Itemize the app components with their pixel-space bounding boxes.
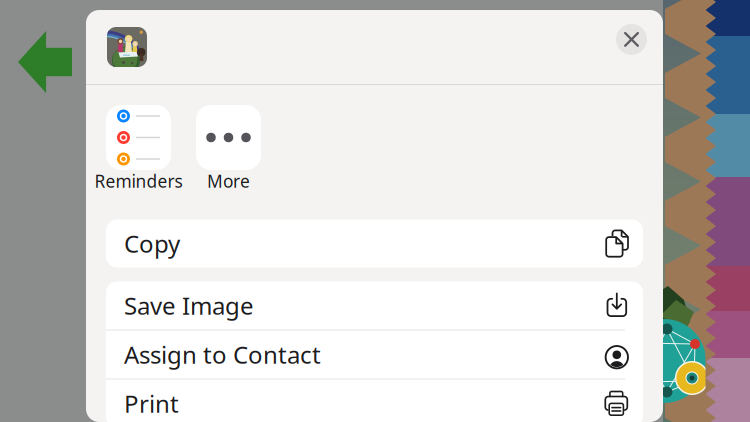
button[interactable]: Save Image bbox=[106, 281, 643, 329]
button[interactable]: Assign to Contact bbox=[106, 330, 643, 378]
button[interactable]: Close bbox=[609, 17, 653, 61]
button[interactable]: More bbox=[183, 105, 273, 192]
staticText: Copy bbox=[124, 228, 180, 259]
staticText: Reminders bbox=[94, 169, 182, 192]
button[interactable]: Print bbox=[106, 379, 643, 422]
staticText: More bbox=[207, 169, 250, 192]
staticText: Assign to Contact bbox=[124, 339, 321, 370]
staticText: Print bbox=[124, 388, 179, 419]
button[interactable]: Copy bbox=[106, 219, 643, 267]
staticText: Save Image bbox=[124, 290, 254, 321]
button[interactable]: Reminders bbox=[93, 105, 183, 192]
